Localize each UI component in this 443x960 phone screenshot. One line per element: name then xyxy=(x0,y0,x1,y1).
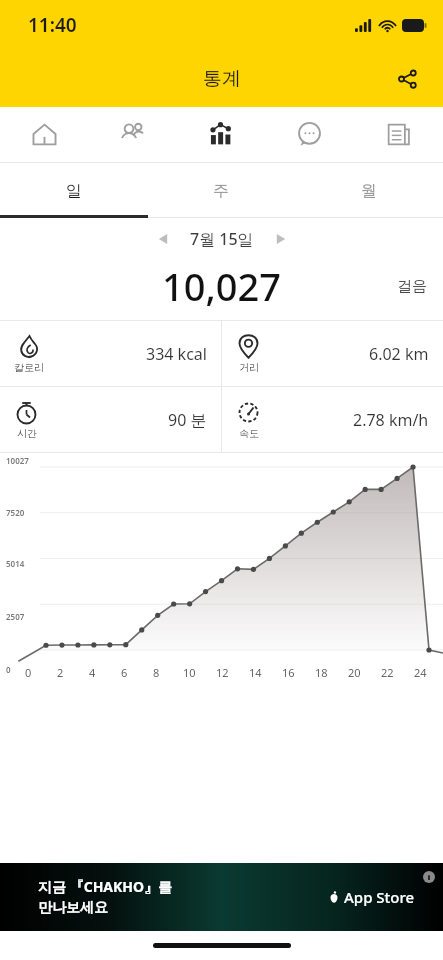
staticText: 시간 xyxy=(17,427,37,440)
staticText: 7520 xyxy=(6,507,25,518)
staticText: 8 xyxy=(153,665,160,680)
button[interactable]: 거리 xyxy=(222,321,443,386)
button[interactable]: 지금 『CHAKHO』를 xyxy=(0,863,443,931)
staticText: 10,027 xyxy=(162,260,282,312)
button[interactable]: Chat xyxy=(265,107,354,162)
button[interactable]: 월 xyxy=(295,163,443,218)
staticText: 20 xyxy=(348,665,361,680)
staticText: 22 xyxy=(381,665,394,680)
staticText: 4 xyxy=(89,665,96,680)
staticText: 만나보세요 xyxy=(38,899,108,917)
staticText: 12 xyxy=(216,665,229,680)
staticText: 지금 『CHAKHO』를 xyxy=(38,877,173,896)
staticText: 11:40 xyxy=(28,12,77,38)
staticText: 18 xyxy=(315,665,328,680)
button[interactable]: Share xyxy=(385,57,429,101)
staticText: App Store xyxy=(344,887,415,907)
staticText: 2.78 km/h xyxy=(353,409,429,431)
staticText: 칼로리 xyxy=(14,361,44,374)
button[interactable]: Previous day xyxy=(146,222,180,256)
button[interactable]: Statistics xyxy=(176,107,265,162)
staticText: 2507 xyxy=(6,611,25,622)
button[interactable]: News xyxy=(354,107,443,162)
staticText: 일 xyxy=(66,181,82,201)
staticText: 0 xyxy=(6,664,11,675)
button[interactable]: 일 xyxy=(0,163,147,218)
button[interactable]: 주 xyxy=(147,163,295,218)
staticText: 16 xyxy=(282,665,295,680)
staticText: 7월 15일 xyxy=(190,228,254,250)
button[interactable]: Next day xyxy=(264,222,298,256)
staticText: 월 xyxy=(361,181,377,201)
staticText: 10027 xyxy=(6,455,29,466)
staticText: 걸음 xyxy=(397,277,427,296)
staticText: 5014 xyxy=(6,558,25,569)
staticText: 속도 xyxy=(239,427,259,440)
staticText: 거리 xyxy=(239,361,259,374)
button[interactable]: 속도 xyxy=(222,387,443,452)
staticText: 334 kcal xyxy=(146,343,207,365)
staticText: 90 분 xyxy=(168,409,207,431)
staticText: 10 xyxy=(183,665,196,680)
staticText: 14 xyxy=(249,665,262,680)
staticText: 6.02 km xyxy=(369,343,429,365)
button[interactable]: 시간 xyxy=(0,387,221,452)
button[interactable]: Home xyxy=(0,107,88,162)
staticText: 0 xyxy=(25,665,32,680)
staticText: 24 xyxy=(414,665,427,680)
button[interactable]: Ad info xyxy=(421,869,437,885)
button[interactable]: 칼로리 xyxy=(0,321,221,386)
staticText: 통계 xyxy=(203,67,241,91)
staticText: 주 xyxy=(213,181,229,201)
staticText: 2 xyxy=(57,665,64,680)
staticText: 6 xyxy=(121,665,128,680)
button[interactable]: Friends xyxy=(88,107,176,162)
